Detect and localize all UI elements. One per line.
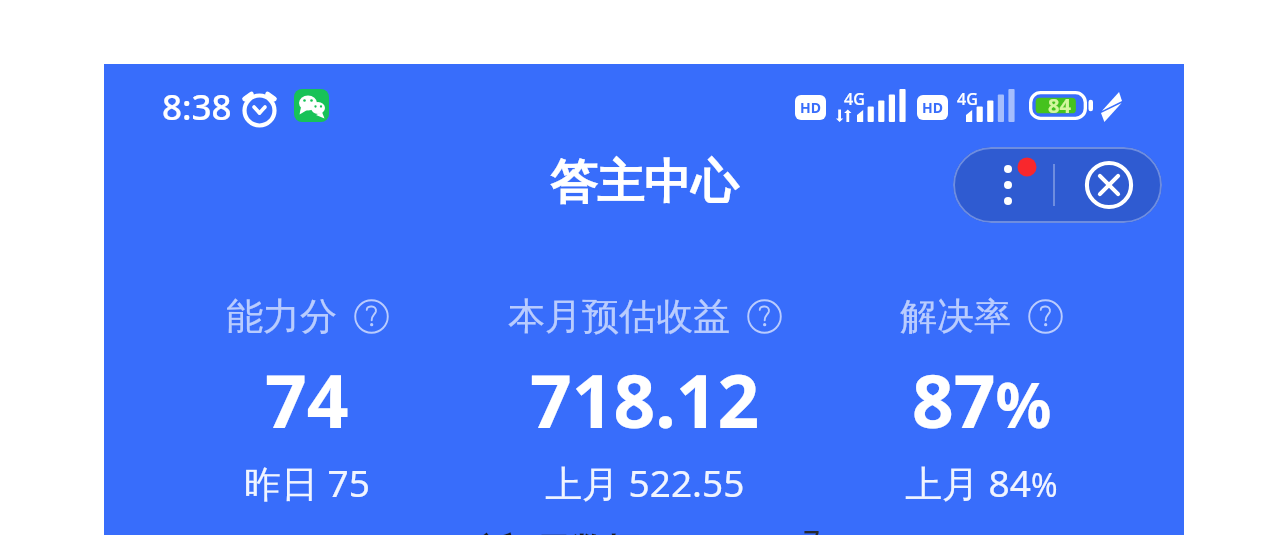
button[interactable]: More options (953, 147, 1053, 223)
staticText: HD (922, 98, 943, 117)
staticText: 4G (957, 88, 978, 110)
staticText: 8:38 (162, 83, 232, 131)
staticText: HD (800, 98, 821, 117)
staticText: 能力分 (226, 293, 337, 340)
staticText: 上月 84% (905, 457, 1058, 508)
staticText: 718.12 (530, 350, 760, 449)
staticText: 本月预估收益 (508, 293, 730, 340)
staticText: 上月 522.55 (545, 457, 745, 508)
staticText: 近7日数据 (481, 526, 642, 535)
button[interactable]: 本月预估收益 (476, 293, 813, 508)
staticText: 84 (1048, 92, 1071, 119)
staticText: 解决率 (900, 293, 1011, 340)
staticText: 昨日 75 (244, 457, 370, 508)
staticText: 4G (844, 88, 865, 110)
staticText: 7 (803, 521, 821, 535)
staticText: 答主中心 (550, 153, 738, 212)
button[interactable]: 能力分 (138, 293, 476, 508)
button[interactable]: 解决率 (813, 293, 1150, 508)
staticText: 74 (265, 350, 349, 449)
staticText: 87% (912, 350, 1052, 449)
button[interactable]: Close (1055, 147, 1162, 223)
